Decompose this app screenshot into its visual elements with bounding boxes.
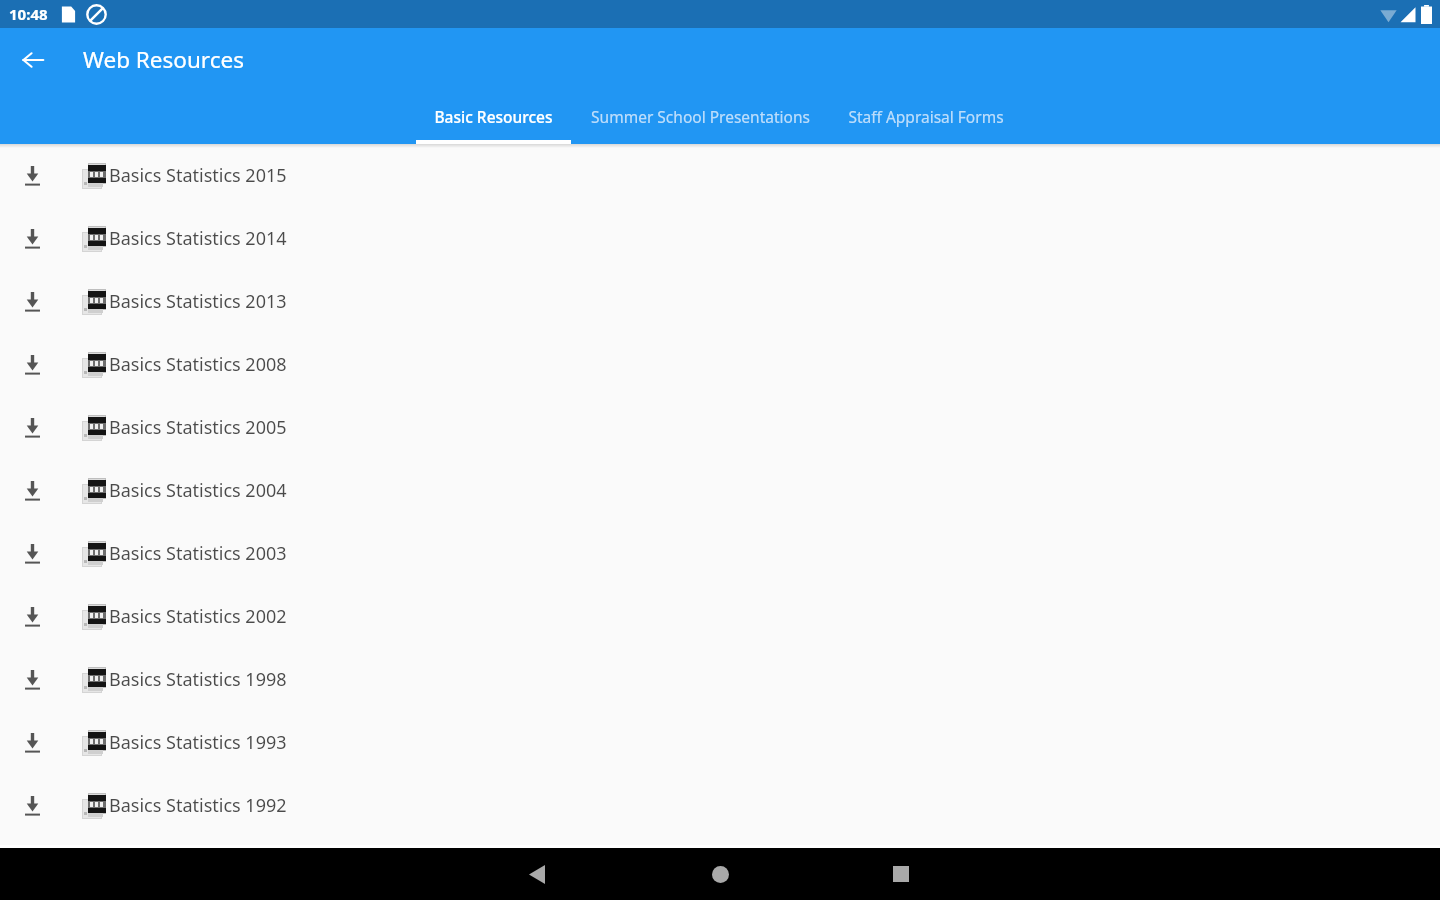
button[interactable]: Basics Statistics 2013	[0, 270, 1440, 333]
staticText: Basics Statistics 2008	[109, 352, 287, 377]
staticText: Basics Statistics 2003	[109, 541, 287, 566]
staticText: Basics Statistics 2013	[109, 289, 287, 314]
staticText: Basics Statistics 2004	[109, 478, 287, 503]
button[interactable]: Back	[9, 36, 57, 84]
button[interactable]: Basics Statistics 2014	[0, 207, 1440, 270]
button[interactable]: Recents	[877, 850, 925, 898]
button[interactable]: Back	[513, 850, 561, 898]
button[interactable]: Summer School Presentations	[571, 92, 830, 144]
button[interactable]: Basics Statistics 1998	[0, 648, 1440, 711]
button[interactable]: Basics Statistics 2004	[0, 459, 1440, 522]
staticText: Basics Statistics 2002	[109, 604, 287, 629]
staticText: Basics Statistics 2014	[109, 226, 287, 251]
staticText: Basics Statistics 2015	[109, 163, 287, 188]
staticText: Web Resources	[83, 44, 244, 75]
staticText: Basics Statistics 1993	[109, 730, 287, 755]
button[interactable]: Basics Statistics 2015	[0, 144, 1440, 207]
button[interactable]: Basics Statistics 1993	[0, 711, 1440, 774]
button[interactable]: Home	[696, 850, 744, 898]
button[interactable]: Basics Statistics 2003	[0, 522, 1440, 585]
staticText: Basic Resources	[434, 106, 553, 127]
button[interactable]: Basics Statistics 2005	[0, 396, 1440, 459]
button[interactable]: Basics Statistics 1992	[0, 774, 1440, 837]
button[interactable]: Basic Resources	[416, 92, 571, 144]
staticText: Staff Appraisal Forms	[848, 106, 1004, 127]
button[interactable]: Basics Statistics 2002	[0, 585, 1440, 648]
staticText: Basics Statistics 2005	[109, 415, 287, 440]
staticText: Summer School Presentations	[591, 106, 810, 127]
staticText: Basics Statistics 1998	[109, 667, 287, 692]
staticText: Basics Statistics 1992	[109, 793, 287, 818]
button[interactable]: Basics Statistics 2008	[0, 333, 1440, 396]
staticText: 10:48	[9, 4, 48, 24]
button[interactable]: Staff Appraisal Forms	[830, 92, 1022, 144]
